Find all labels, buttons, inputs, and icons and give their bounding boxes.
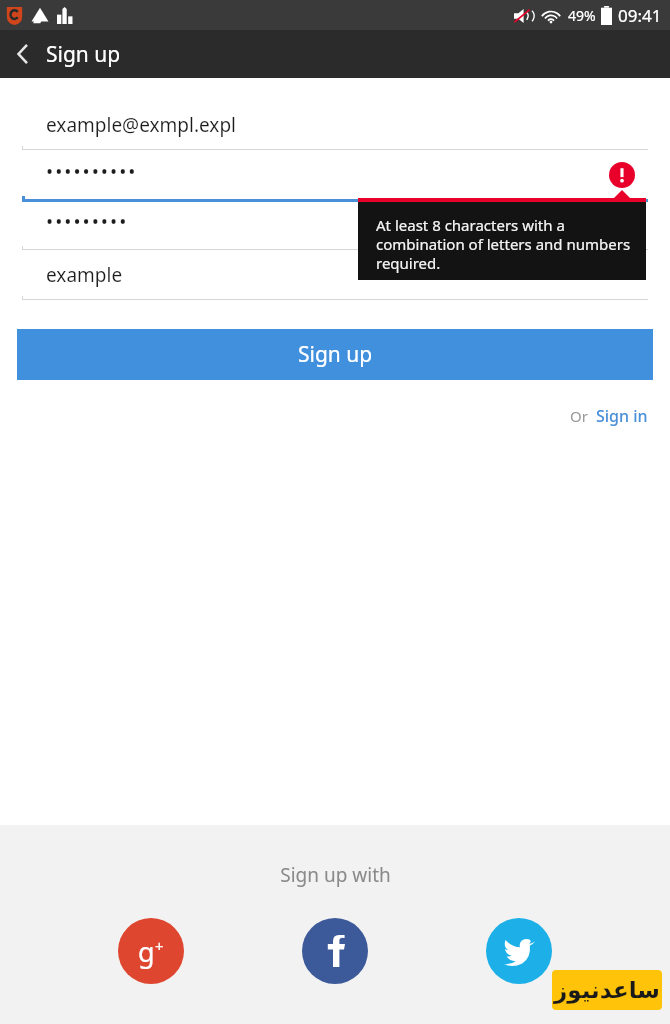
staticText: example bbox=[46, 262, 123, 288]
button[interactable]: Back bbox=[0, 30, 46, 78]
staticText: 49% bbox=[568, 6, 596, 25]
staticText: example@exmpl.expl bbox=[46, 112, 237, 138]
staticText: Sign up bbox=[298, 340, 373, 369]
button[interactable]: ••••••••• bbox=[0, 200, 670, 250]
staticText: Sign up with bbox=[280, 862, 391, 888]
staticText: Or bbox=[570, 406, 588, 426]
staticText: Sign up bbox=[46, 40, 121, 69]
staticText: ••••••••• bbox=[46, 209, 129, 235]
staticText: + bbox=[155, 936, 164, 956]
button[interactable]: Sign up bbox=[17, 329, 653, 380]
button[interactable]: example@exmpl.expl bbox=[0, 100, 670, 150]
staticText: 09:41 bbox=[618, 4, 662, 27]
button[interactable]: example bbox=[0, 250, 670, 300]
staticText: •••••••••• bbox=[46, 159, 138, 185]
button[interactable]: Sign up with Facebook bbox=[302, 918, 368, 984]
button[interactable]: Password error bbox=[609, 162, 635, 188]
button[interactable]: Sign up with Twitter bbox=[486, 918, 552, 984]
button[interactable]: •••••••••• bbox=[0, 150, 670, 200]
staticText: ساعدنیوز bbox=[554, 977, 660, 1004]
staticText: g bbox=[138, 933, 155, 970]
button[interactable]: Sign up with Google bbox=[118, 918, 184, 984]
staticText: At least 8 characters with a combination… bbox=[376, 215, 634, 273]
button[interactable]: Sign in bbox=[596, 405, 648, 427]
staticText: Sign in bbox=[596, 405, 648, 427]
